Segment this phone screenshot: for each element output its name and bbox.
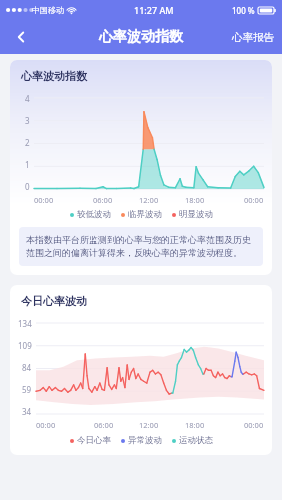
staticText: 心率波动指数 <box>21 69 87 83</box>
button[interactable]: 心率报告 <box>224 25 282 50</box>
staticText: 今日心率 <box>77 435 111 446</box>
staticText: 06:00 <box>93 195 113 205</box>
staticText: 12:00 <box>139 420 159 430</box>
staticText: 1 <box>25 159 30 170</box>
staticText: 0 <box>25 181 30 192</box>
staticText: 3 <box>25 115 30 126</box>
staticText: 较低波动 <box>77 209 111 220</box>
staticText: 异常波动 <box>128 435 162 446</box>
staticText: 中国移动 <box>32 5 64 15</box>
staticText: 34 <box>22 406 32 417</box>
staticText: 00:00 <box>34 195 54 205</box>
staticText: 100 % <box>232 5 255 16</box>
staticText: 今日心率波动 <box>21 294 87 308</box>
staticText: 11:27 AM <box>134 4 174 16</box>
staticText: 运动状态 <box>179 435 213 446</box>
staticText: 59 <box>22 384 32 395</box>
staticText: 00:00 <box>36 420 56 430</box>
staticText: 临界波动 <box>128 209 162 220</box>
staticText: 2 <box>25 137 30 148</box>
staticText: 12:00 <box>139 195 159 205</box>
staticText: 00:00 <box>244 195 264 205</box>
staticText: 84 <box>22 362 32 373</box>
staticText: 心率报告 <box>232 31 274 44</box>
staticText: 18:00 <box>185 420 205 430</box>
staticText: 明显波动 <box>179 209 213 220</box>
staticText: 4 <box>25 93 30 104</box>
staticText: 心率波动指数 <box>99 28 183 46</box>
staticText: 06:00 <box>94 420 114 430</box>
staticText: 134 <box>18 318 32 329</box>
staticText: 00:00 <box>244 420 264 430</box>
button[interactable]: Back <box>4 20 38 54</box>
staticText: 本指数由平台所监测到的心率与您的正常心率范围及历史范围之间的偏离计算得来，反映心… <box>26 234 256 259</box>
staticText: 109 <box>18 340 32 351</box>
staticText: 18:00 <box>185 195 205 205</box>
